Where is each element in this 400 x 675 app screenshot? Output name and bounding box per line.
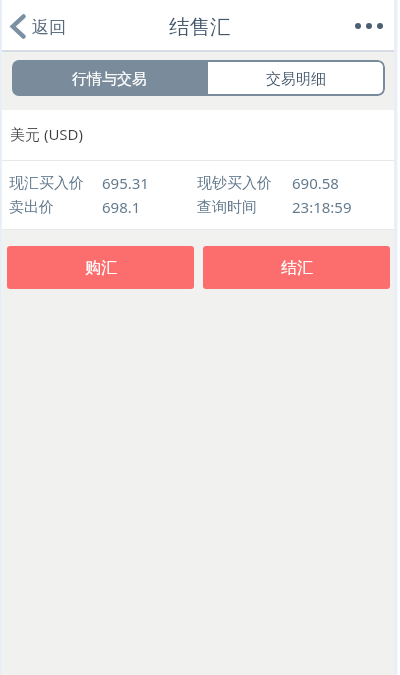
staticText: 查询时间 [197, 198, 257, 217]
staticText: 返回 [32, 17, 66, 38]
staticText: 698.1 [102, 197, 141, 217]
staticText: 交易明细 [266, 70, 326, 89]
staticText: 结汇 [281, 258, 313, 278]
staticText: 690.58 [292, 173, 339, 193]
staticText: 695.31 [102, 173, 149, 193]
button[interactable]: 购汇 [7, 246, 194, 289]
staticText: 行情与交易 [72, 70, 147, 89]
staticText: 购汇 [85, 258, 117, 278]
staticText: 现汇买入价 [9, 174, 84, 193]
button[interactable]: 返回 [0, 7, 78, 46]
button[interactable]: 行情与交易 [12, 60, 206, 96]
staticText: 结售汇 [169, 14, 231, 40]
staticText: 美元 (USD) [10, 124, 84, 144]
staticText: 卖出价 [9, 198, 54, 217]
staticText: 现钞买入价 [197, 174, 272, 193]
button[interactable]: 结汇 [203, 246, 390, 289]
staticText: 23:18:59 [292, 197, 352, 217]
button[interactable]: 交易明细 [206, 60, 385, 96]
button[interactable]: More options [341, 9, 400, 43]
